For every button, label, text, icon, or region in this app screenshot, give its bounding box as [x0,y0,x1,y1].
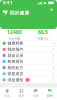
staticText: 我的健康 [9,10,29,16]
staticText: 今日步数 [8,36,20,41]
staticText: 服务 [18,94,24,98]
staticText: 我的处方 [8,65,24,70]
staticText: 检查报告 [8,59,24,64]
staticText: 消息 [33,94,39,98]
staticText: 首页 [4,94,10,98]
button[interactable]: 68.5 [28,28,57,41]
staticText: 68.5 [38,28,48,35]
staticText: 9:41 [3,0,13,6]
button[interactable]: 消息 [28,89,43,98]
staticText: 12480 [7,28,22,36]
button[interactable]: 检查报告 [0,59,57,65]
button[interactable]: 家庭成员 [0,71,57,77]
staticText: 体重 kg [37,36,48,41]
button[interactable]: 12480 [0,28,28,41]
staticText: 我的 [47,94,53,98]
staticText: 就诊记录 [8,53,24,58]
button[interactable]: 我的预约 [0,46,57,53]
staticText: 消息通知 [8,77,24,82]
staticText: 我的预约 [8,47,24,52]
staticText: 健康档案 [8,41,24,46]
button[interactable]: 我的处方 [0,65,57,71]
button[interactable]: 消息通知 [0,77,57,83]
button[interactable]: 健康档案 [0,40,57,46]
staticText: 家庭成员 [8,71,24,76]
button[interactable]: 我的 [43,89,57,98]
button[interactable]: 首页 [0,89,14,98]
button[interactable]: 服务 [14,89,28,98]
button[interactable]: 就诊记录 [0,53,57,59]
staticText: 3 [26,78,28,82]
